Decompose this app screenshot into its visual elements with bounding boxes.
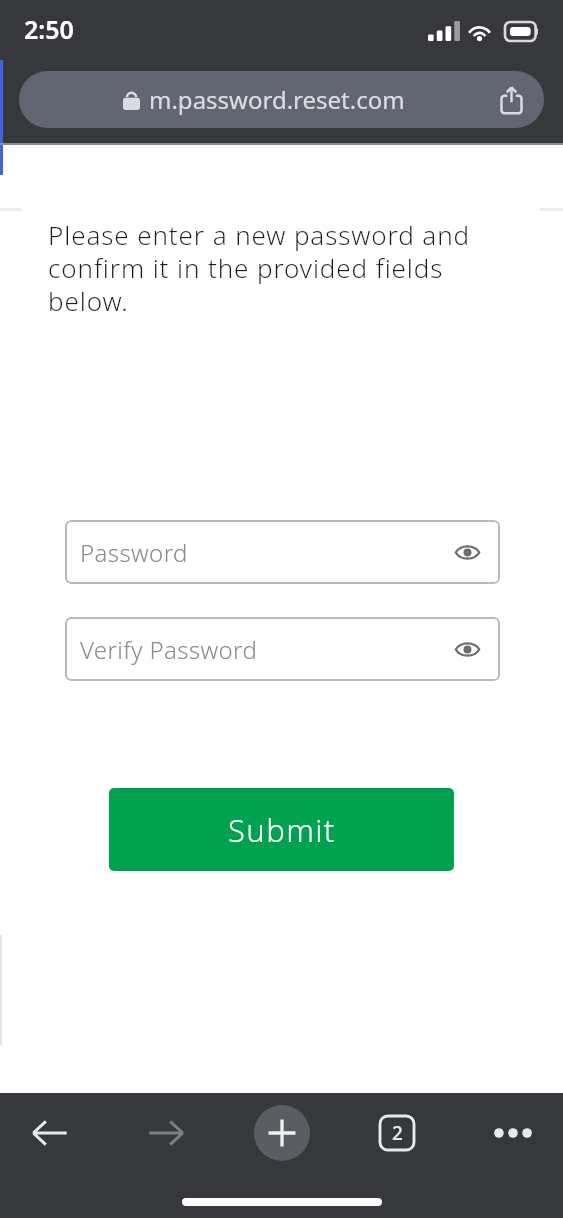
- button[interactable]: Share: [494, 83, 528, 117]
- staticText: Submit: [228, 809, 336, 851]
- staticText: Please enter a new password and confirm …: [48, 217, 523, 319]
- button[interactable]: Back: [22, 1105, 78, 1161]
- button[interactable]: m.password.reset.com: [19, 71, 544, 128]
- staticText: 2: [392, 1120, 403, 1146]
- button[interactable]: Forward: [138, 1105, 194, 1161]
- button[interactable]: Show password: [452, 634, 482, 664]
- staticText: Verify Password: [80, 633, 258, 666]
- button[interactable]: Submit: [109, 788, 454, 871]
- button[interactable]: Show password: [452, 537, 482, 567]
- button[interactable]: Password: [65, 520, 500, 584]
- button[interactable]: More options: [485, 1105, 541, 1161]
- staticText: Password: [80, 536, 188, 569]
- button[interactable]: Tabs: [369, 1105, 425, 1161]
- staticText: 2:50: [24, 12, 74, 46]
- button[interactable]: New tab: [254, 1105, 310, 1161]
- staticText: m.password.reset.com: [149, 83, 405, 116]
- button[interactable]: Verify Password: [65, 617, 500, 681]
